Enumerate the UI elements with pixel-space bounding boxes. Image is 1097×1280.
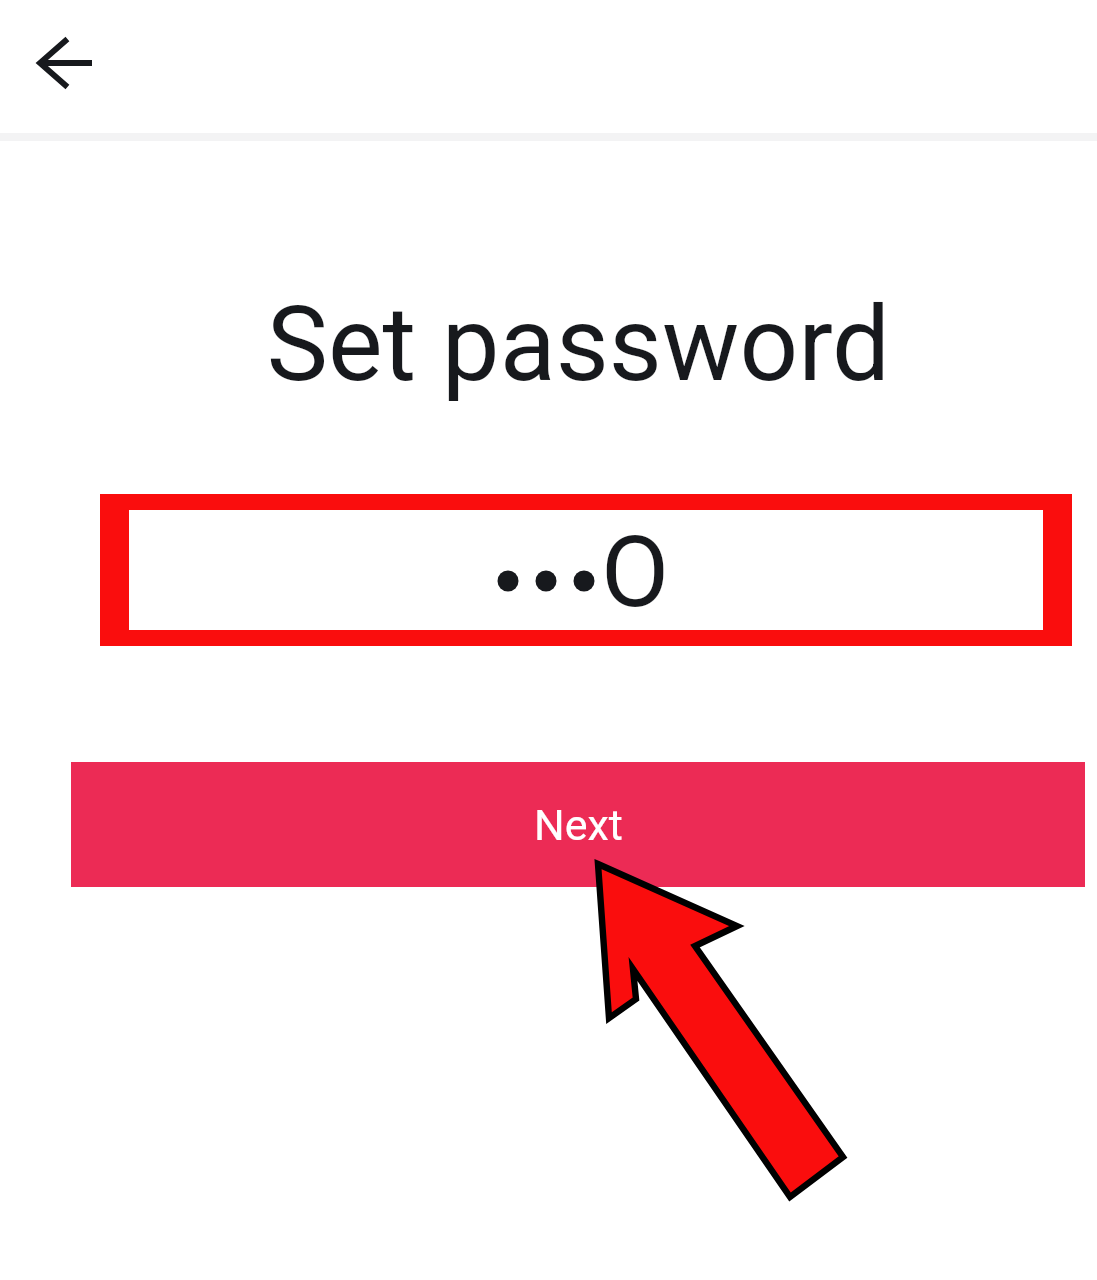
staticText: Set password — [30, 284, 1097, 405]
button[interactable]: Password field — [129, 510, 1043, 630]
button[interactable]: Back — [17, 15, 113, 111]
staticText: O — [601, 514, 670, 630]
button[interactable]: Next — [71, 762, 1085, 887]
staticText: Next — [534, 800, 623, 850]
